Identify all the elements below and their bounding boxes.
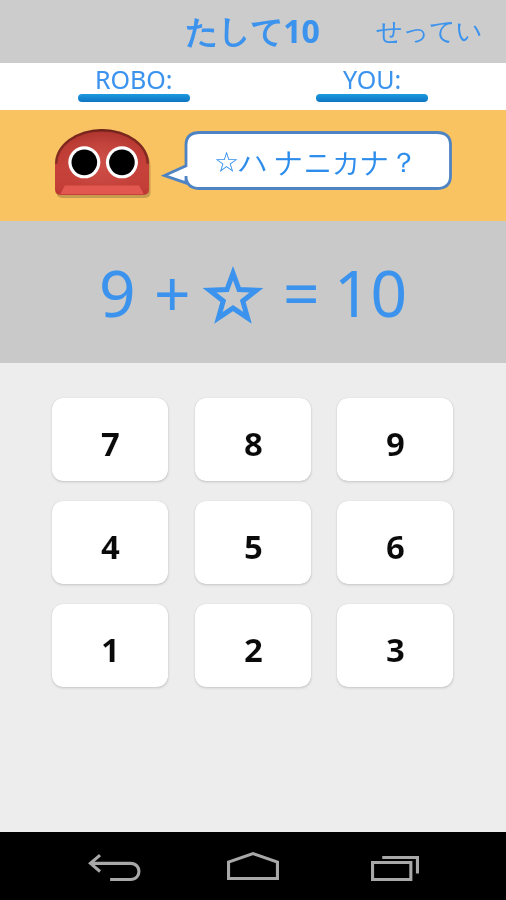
staticText: 6 (386, 524, 405, 569)
staticText: YOU: (343, 62, 402, 96)
staticText: ☆ハ ナニカナ？ (214, 142, 418, 180)
button[interactable]: 8 (195, 398, 311, 481)
button[interactable]: ROBO: (78, 63, 190, 105)
button[interactable]: 7 (52, 398, 168, 481)
button[interactable]: 5 (195, 501, 311, 584)
staticText: 7 (101, 421, 120, 466)
button[interactable]: 4 (52, 501, 168, 584)
staticText: 8 (244, 421, 263, 466)
staticText: 1 (101, 627, 120, 672)
button[interactable]: Home (206, 832, 300, 900)
staticText: 3 (386, 627, 405, 672)
button[interactable]: 1 (52, 604, 168, 687)
staticText: 10 (334, 249, 408, 336)
button[interactable]: せってい (366, 9, 493, 54)
button[interactable]: 6 (337, 501, 453, 584)
staticText: 2 (244, 627, 263, 672)
staticText: + (154, 249, 191, 336)
staticText: たして10 (185, 9, 320, 53)
staticText: せってい (376, 15, 483, 48)
button[interactable]: 3 (337, 604, 453, 687)
staticText: 5 (244, 524, 263, 569)
staticText: = (283, 249, 320, 336)
staticText: ROBO: (95, 62, 173, 96)
staticText: 9 (386, 421, 405, 466)
staticText: 4 (101, 524, 120, 569)
button[interactable]: Recent apps (348, 832, 442, 900)
button[interactable]: YOU: (316, 63, 428, 105)
button[interactable]: Back (66, 832, 160, 900)
button[interactable]: 9 (337, 398, 453, 481)
button[interactable]: 2 (195, 604, 311, 687)
staticText: 9 (99, 249, 136, 336)
